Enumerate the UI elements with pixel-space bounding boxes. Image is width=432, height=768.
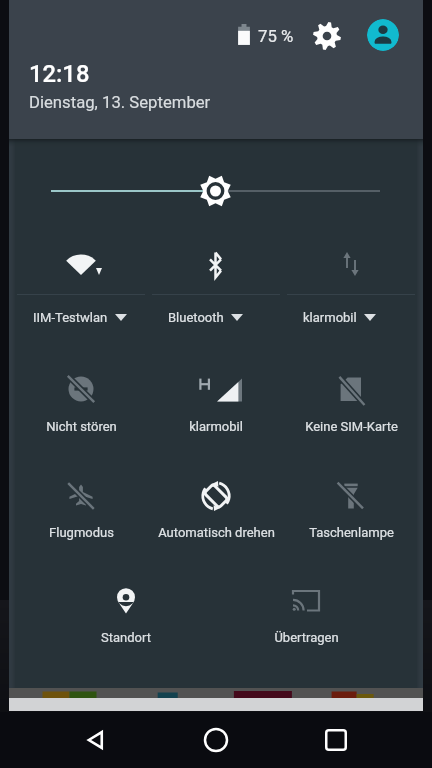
staticText: Automatisch drehen (158, 525, 275, 540)
button[interactable]: Flugmodus (14, 470, 148, 548)
staticText: klarmobil (303, 310, 357, 325)
staticText: 12:18 (29, 60, 90, 88)
button[interactable]: Automatisch drehen (149, 470, 283, 548)
staticText: Übertragen (274, 630, 339, 645)
button[interactable]: klarmobil (284, 238, 418, 338)
staticText: Flugmodus (49, 525, 114, 540)
staticText: Standort (101, 630, 151, 645)
button[interactable]: Brightness (30, 165, 400, 217)
staticText: Bluetooth (168, 310, 224, 325)
staticText: 75 % (258, 26, 294, 46)
staticText: Keine SIM-Karte (305, 419, 398, 434)
button[interactable]: Settings (309, 18, 345, 54)
staticText: Nicht stören (46, 419, 117, 434)
button[interactable]: IIM-Testwlan (14, 238, 148, 338)
button[interactable]: Taschenlampe (284, 470, 418, 548)
staticText: klarmobil (189, 419, 243, 434)
button[interactable]: User profile (367, 19, 399, 51)
staticText: Dienstag, 13. September (29, 93, 211, 113)
staticText: Taschenlampe (309, 525, 394, 540)
button[interactable]: klarmobil (149, 363, 283, 442)
button[interactable]: Bluetooth (149, 238, 283, 338)
button[interactable]: Keine SIM-Karte (284, 363, 418, 442)
button[interactable]: Nicht stören (14, 363, 148, 442)
staticText: IIM-Testwlan (33, 310, 108, 325)
button[interactable]: Home (192, 712, 240, 768)
button[interactable]: Standort (59, 575, 193, 653)
button[interactable]: Recent apps (312, 712, 360, 768)
button[interactable]: Back (72, 712, 120, 768)
button[interactable]: Übertragen (239, 575, 373, 653)
